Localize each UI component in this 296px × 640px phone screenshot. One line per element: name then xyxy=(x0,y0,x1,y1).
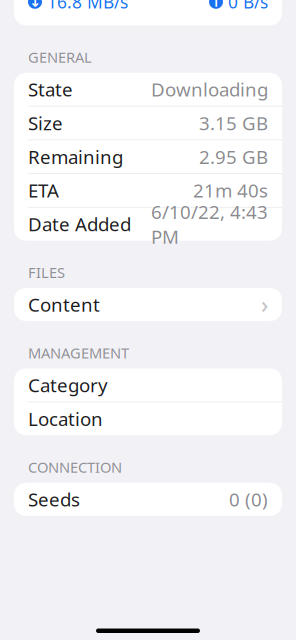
button[interactable]: Date Added xyxy=(14,208,282,241)
staticText: CONNECTION xyxy=(28,457,122,477)
staticText: State xyxy=(28,77,73,102)
staticText: Downloading xyxy=(151,77,268,102)
button[interactable]: Category xyxy=(14,368,282,401)
staticText: 0 (0) xyxy=(229,487,268,512)
staticText: MANAGEMENT xyxy=(28,343,129,363)
staticText: Seeds xyxy=(28,487,80,512)
button[interactable]: Seeds xyxy=(14,483,282,516)
staticText: 6/10/22, 4:43 PM xyxy=(151,199,268,249)
staticText: Content xyxy=(28,292,100,317)
button[interactable]: ETA xyxy=(14,174,282,207)
button[interactable]: Content xyxy=(14,288,282,321)
staticText: 3.15 GB xyxy=(199,111,268,135)
button[interactable]: State xyxy=(14,73,282,106)
staticText: ↓ xyxy=(29,0,41,10)
staticText: › xyxy=(261,289,268,320)
staticText: 0 B/s xyxy=(228,0,268,13)
button[interactable]: Location xyxy=(14,402,282,435)
staticText: Size xyxy=(28,111,63,135)
staticText: ETA xyxy=(28,178,59,203)
staticText: FILES xyxy=(28,263,65,282)
staticText: Category xyxy=(28,373,108,397)
button[interactable]: Remaining xyxy=(14,140,282,173)
staticText: 21m 40s xyxy=(193,178,268,203)
staticText: Remaining xyxy=(28,144,123,169)
staticText: ↑ xyxy=(210,0,222,10)
staticText: Date Added xyxy=(28,212,131,236)
staticText: 2.95 GB xyxy=(199,144,268,169)
button[interactable]: Size xyxy=(14,106,282,139)
staticText: Location xyxy=(28,406,103,431)
staticText: GENERAL xyxy=(28,47,92,67)
staticText: 16.8 MB/s xyxy=(47,0,128,13)
